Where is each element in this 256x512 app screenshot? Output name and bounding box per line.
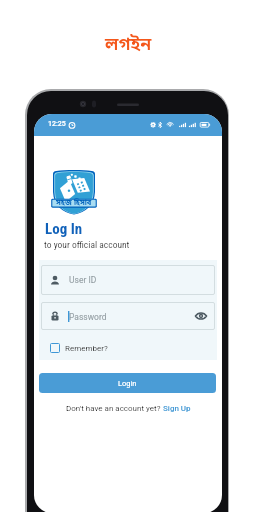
button[interactable]: Sign Up xyxy=(163,404,191,413)
button[interactable]: Remember? xyxy=(50,341,108,355)
staticText: to your official account xyxy=(44,239,130,250)
button[interactable]: Password xyxy=(41,302,215,330)
button[interactable]: Login xyxy=(39,373,216,393)
staticText: সহজ হিসাব xyxy=(56,198,92,208)
staticText: User ID xyxy=(69,275,97,285)
staticText: Password xyxy=(69,312,107,322)
staticText: Sign Up xyxy=(163,404,191,413)
staticText: 12:25 xyxy=(48,120,66,128)
staticText: Don't have an account yet? xyxy=(66,404,163,413)
staticText: Log In xyxy=(45,220,83,238)
staticText: Remember? xyxy=(65,344,108,353)
button[interactable]: User ID xyxy=(41,265,215,295)
staticText: লগইন xyxy=(105,33,152,57)
button[interactable]: Show password xyxy=(195,310,207,322)
staticText: Login xyxy=(118,379,137,388)
